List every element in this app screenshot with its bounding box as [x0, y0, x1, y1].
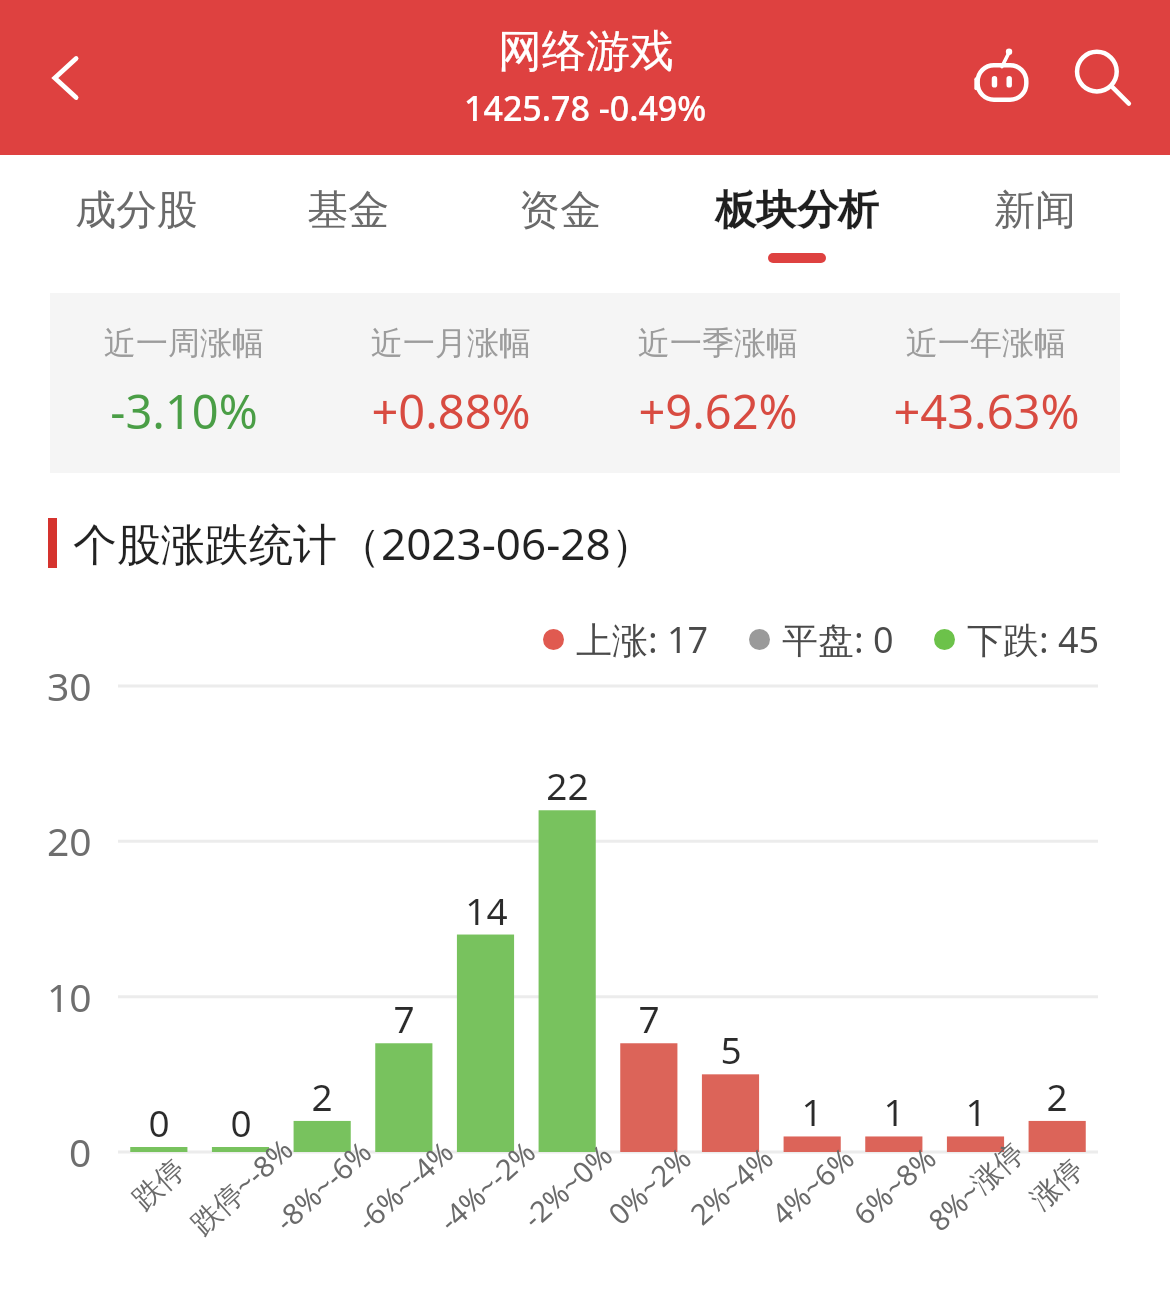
button[interactable]: 新闻	[929, 155, 1140, 293]
staticText: 0	[69, 1125, 92, 1178]
staticText: 7	[393, 993, 415, 1043]
staticText: 5	[720, 1024, 742, 1074]
staticText: 6%~8%	[844, 1138, 943, 1233]
staticText: +9.62%	[638, 379, 798, 443]
staticText: 跌停	[125, 1151, 193, 1218]
staticText: 0	[148, 1097, 170, 1147]
staticText: 个股涨跌统计（2023-06-28）	[73, 513, 655, 573]
staticText: 1425.78 -0.49%	[464, 85, 707, 131]
staticText: 7	[638, 993, 660, 1043]
staticText: 14	[465, 885, 508, 935]
staticText: 跌停~-8%	[182, 1129, 301, 1243]
staticText: 上涨: 17	[576, 615, 709, 664]
staticText: 2%~4%	[681, 1138, 780, 1233]
staticText: 2	[1046, 1071, 1068, 1121]
staticText: +43.63%	[893, 379, 1080, 443]
staticText: 近一年涨幅	[906, 323, 1066, 363]
staticText: 资金	[519, 185, 601, 237]
button[interactable]: AI assistant	[952, 28, 1052, 128]
button[interactable]: 基金	[242, 155, 454, 293]
staticText: 2	[311, 1071, 333, 1121]
staticText: 板块分析	[715, 185, 879, 237]
button[interactable]: 板块分析	[665, 155, 929, 293]
button[interactable]: 成分股	[30, 155, 242, 293]
staticText: 8%~涨停	[919, 1132, 1032, 1240]
staticText: 20	[47, 814, 92, 867]
staticText: -8%~-6%	[266, 1132, 379, 1239]
staticText: 近一月涨幅	[371, 323, 531, 363]
staticText: 成分股	[75, 185, 198, 237]
staticText: +0.88%	[371, 379, 531, 443]
staticText: 平盘: 0	[782, 615, 894, 664]
button[interactable]: Search	[1052, 28, 1152, 128]
staticText: 下跌: 45	[967, 615, 1100, 664]
staticText: -2%~0%	[514, 1135, 620, 1236]
staticText: -6%~-4%	[348, 1132, 461, 1239]
staticText: -3.10%	[110, 379, 258, 443]
staticText: 0	[230, 1097, 252, 1147]
staticText: 涨停	[1023, 1151, 1091, 1218]
staticText: 1	[965, 1086, 987, 1136]
staticText: -4%~-2%	[430, 1132, 543, 1239]
staticText: 22	[546, 760, 589, 810]
staticText: 1	[883, 1086, 905, 1136]
staticText: 新闻	[994, 185, 1076, 237]
staticText: 近一季涨幅	[638, 323, 798, 363]
staticText: 基金	[307, 185, 389, 237]
staticText: 1	[801, 1086, 823, 1136]
button[interactable]: Back	[16, 28, 116, 128]
button[interactable]: 资金	[454, 155, 665, 293]
staticText: 30	[47, 659, 92, 712]
staticText: 0%~2%	[599, 1138, 698, 1233]
staticText: 4%~6%	[762, 1138, 861, 1233]
staticText: 10	[47, 970, 92, 1023]
staticText: 网络游戏	[498, 24, 674, 79]
staticText: 近一周涨幅	[104, 323, 264, 363]
